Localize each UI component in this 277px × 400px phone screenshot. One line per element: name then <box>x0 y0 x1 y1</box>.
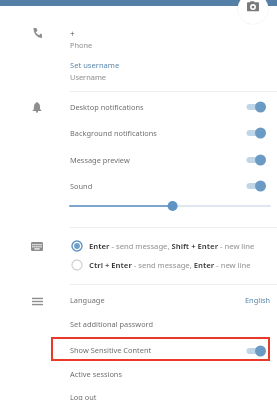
staticText: Language <box>70 295 105 305</box>
staticText: Phone <box>70 40 93 50</box>
button[interactable]: Message preview <box>0 150 277 170</box>
staticText: + <box>70 28 75 39</box>
button[interactable]: Desktop notifications <box>0 97 277 117</box>
staticText: Set additional password <box>70 319 154 329</box>
staticText: Active sessions <box>70 369 122 379</box>
staticText: Enter - send message, Shift + Enter - ne… <box>89 241 255 251</box>
staticText: Set username <box>70 60 120 70</box>
staticText: Sound <box>70 181 93 191</box>
button[interactable]: Log out <box>0 387 277 400</box>
button[interactable]: Sound <box>0 176 277 196</box>
button[interactable]: Active sessions <box>0 364 277 384</box>
button[interactable]: Ctrl + Enter - send message, Enter - new… <box>0 255 277 275</box>
button[interactable]: Background notifications <box>0 123 277 143</box>
staticText: English <box>245 295 271 305</box>
button[interactable]: Set additional password <box>0 314 277 334</box>
staticText: Username <box>70 72 106 82</box>
button[interactable]: Show Sensitive Content <box>0 340 277 360</box>
staticText: Background notifications <box>70 128 157 138</box>
button[interactable]: Camera <box>238 0 268 24</box>
button[interactable]: English <box>245 291 271 309</box>
button[interactable]: Set username <box>0 56 277 84</box>
staticText: Log out <box>70 392 97 400</box>
button[interactable]: + <box>0 24 277 52</box>
staticText: Ctrl + Enter - send message, Enter - new… <box>89 260 251 270</box>
staticText: Desktop notifications <box>70 102 144 112</box>
button[interactable]: Enter - send message, Shift + Enter - ne… <box>0 236 277 256</box>
staticText: Show Sensitive Content <box>70 345 152 355</box>
button[interactable]: Language <box>0 290 277 310</box>
staticText: Message preview <box>70 155 130 165</box>
